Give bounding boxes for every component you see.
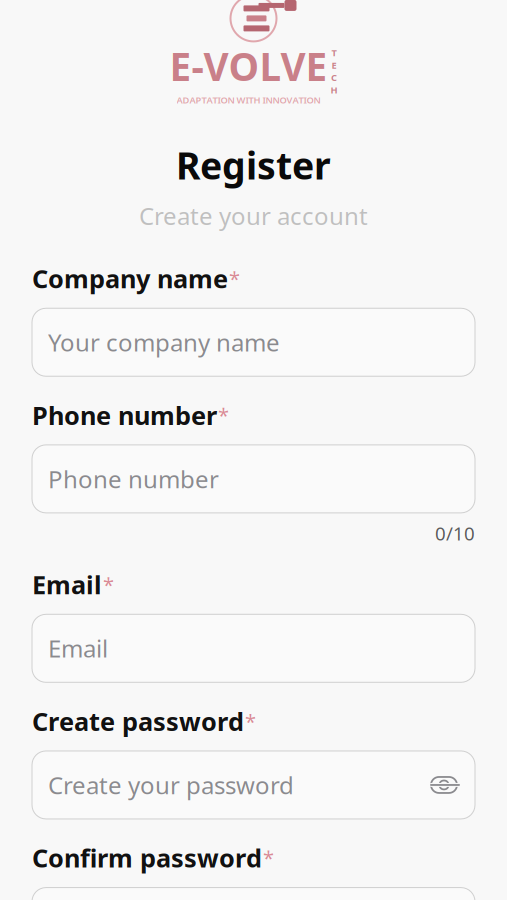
- staticText: *: [245, 708, 256, 734]
- staticText: Company name: [32, 262, 228, 295]
- button[interactable]: Create your password: [32, 751, 475, 819]
- staticText: *: [263, 844, 274, 871]
- staticText: Phone number: [48, 463, 219, 495]
- staticText: T: [331, 46, 336, 59]
- staticText: H: [330, 84, 337, 96]
- button[interactable]: Email: [32, 614, 475, 682]
- staticText: C: [331, 71, 337, 84]
- button[interactable]: Phone number: [32, 445, 475, 513]
- staticText: *: [229, 265, 240, 292]
- staticText: Phone number: [32, 398, 217, 432]
- staticText: 0/10: [435, 521, 475, 546]
- button[interactable]: Your company name: [32, 308, 475, 376]
- staticText: Email: [32, 568, 102, 601]
- staticText: E-VOLVE: [169, 40, 327, 92]
- staticText: E: [331, 59, 336, 71]
- staticText: ADAPTATION WITH INNOVATION: [176, 94, 320, 106]
- staticText: Create your account: [139, 200, 368, 232]
- staticText: Your company name: [48, 326, 280, 358]
- staticText: *: [218, 402, 229, 428]
- staticText: Confirm password: [32, 841, 262, 875]
- staticText: Create your password: [48, 769, 294, 801]
- staticText: Create password: [32, 704, 244, 738]
- staticText: Email: [48, 632, 108, 664]
- staticText: *: [103, 571, 114, 598]
- staticText: Register: [176, 140, 331, 190]
